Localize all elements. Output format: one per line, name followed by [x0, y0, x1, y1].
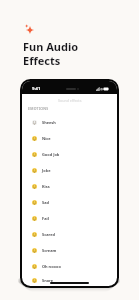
staticText: Snore [42, 278, 54, 283]
staticText: Sheesh [42, 120, 56, 125]
staticText: Nice [42, 136, 51, 141]
button[interactable]: Nice [22, 130, 117, 146]
button[interactable]: Oh noooo [22, 258, 117, 274]
button[interactable]: Joke [22, 162, 117, 178]
button[interactable]: Kiss [22, 178, 117, 194]
staticText: Oh noooo [42, 264, 61, 269]
button[interactable]: Fail [22, 210, 117, 226]
staticText: 9:41 [32, 86, 41, 92]
button[interactable]: Scream [22, 242, 117, 258]
button[interactable]: Sheesh [22, 114, 117, 130]
button[interactable]: Good Job [22, 146, 117, 162]
staticText: Joke [42, 168, 51, 173]
staticText: Fail [42, 216, 49, 221]
staticText: Sound effects [58, 98, 82, 103]
staticText: Fun Audio Effects [23, 39, 79, 68]
other: Sparkle [22, 18, 38, 34]
button[interactable]: Sad [22, 194, 117, 210]
staticText: Kiss [42, 184, 50, 189]
staticText: EMOTIONS [28, 106, 49, 111]
staticText: Sad [42, 200, 49, 205]
staticText: Scream [42, 248, 57, 253]
staticText: Good Job [42, 152, 60, 157]
button[interactable]: Scared [22, 226, 117, 242]
button[interactable]: Snore [22, 274, 117, 286]
staticText: Scared [42, 232, 55, 237]
